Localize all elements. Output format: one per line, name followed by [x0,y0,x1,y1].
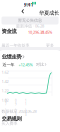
staticText: 对比 [36,62,44,67]
staticText: 最新净值 · 06-28 [16,23,44,29]
staticText: +12.45% [18,62,32,67]
staticText: 业绩走势 [1,53,21,60]
staticText: 10,296.30 [28,29,44,35]
staticText: 1.62 [1,69,8,75]
staticText: 最近一年收益率 [1,43,29,48]
staticText: 买入费率 [1,121,17,126]
staticText: 1.22 [1,88,8,93]
staticText: 11-23 [25,99,27,117]
staticText: 资金流 [1,28,16,35]
staticText: 华夏成长 [39,10,59,16]
staticText: 暂无公告信息 [18,18,42,23]
staticText: 更多 [46,43,54,48]
staticText: 9:41 [23,1,33,8]
staticText: 07-23 [5,99,7,117]
staticText: 1.02 [1,97,8,103]
button[interactable]: Back [20,8,27,17]
button[interactable]: 业绩走势 [1,53,25,60]
staticText: 09-23 [15,99,17,117]
staticText: -1.45% [41,29,52,35]
staticText: 1.42 [1,79,8,84]
button[interactable]: 更多 [46,43,54,48]
staticText: 交易规则 [1,115,21,122]
button[interactable]: 对比 [36,62,47,67]
button[interactable]: 近一年 [2,62,14,67]
staticText: 近一年 [2,62,14,67]
button[interactable]: +12.45% [18,62,32,67]
staticText: 数据截至 2024-06-28 [1,108,36,114]
